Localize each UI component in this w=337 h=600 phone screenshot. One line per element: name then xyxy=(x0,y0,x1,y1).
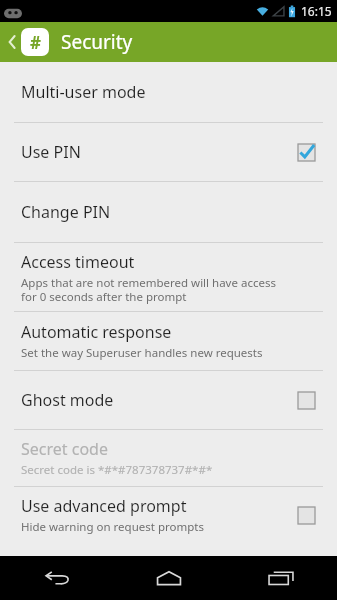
staticText: Access timeout xyxy=(21,251,135,273)
staticText: Automatic response xyxy=(21,321,172,343)
button[interactable]: Home xyxy=(113,556,225,600)
staticText: Ghost mode xyxy=(21,389,114,411)
staticText: Use advanced prompt xyxy=(21,495,187,517)
staticText: Change PIN xyxy=(21,201,111,223)
button[interactable]: Use advanced prompt xyxy=(0,487,337,543)
button[interactable]: Secret code xyxy=(0,430,337,486)
button[interactable]: Ghost mode xyxy=(0,371,337,429)
staticText: 16:15 xyxy=(301,3,332,19)
staticText: Multi-user mode xyxy=(21,81,146,103)
staticText: Set the way Superuser handles new reques… xyxy=(21,345,263,361)
staticText: Secret code is *#*#787378737#*#* xyxy=(21,462,213,478)
button[interactable]: Back xyxy=(0,556,113,600)
staticText: # xyxy=(30,31,41,54)
staticText: Apps that are not remembered will have a… xyxy=(21,275,276,304)
staticText: Use PIN xyxy=(21,141,81,163)
button[interactable]: Use advanced prompt toggle xyxy=(291,500,321,530)
button[interactable]: Access timeout xyxy=(0,243,337,311)
button[interactable]: Use PIN xyxy=(0,123,337,181)
other: Back xyxy=(6,32,18,52)
button[interactable]: Multi-user mode xyxy=(0,62,337,122)
staticText: Hide warning on request prompts xyxy=(21,519,204,535)
button[interactable]: Automatic response xyxy=(0,312,337,370)
staticText: Secret code xyxy=(21,438,108,460)
button[interactable]: Ghost mode toggle xyxy=(291,385,321,415)
staticText: Security xyxy=(61,29,133,55)
button[interactable]: Change PIN xyxy=(0,182,337,242)
button[interactable]: Recent apps xyxy=(225,556,337,600)
button[interactable]: Back xyxy=(0,22,337,62)
button[interactable]: Use PIN toggle xyxy=(291,137,321,167)
